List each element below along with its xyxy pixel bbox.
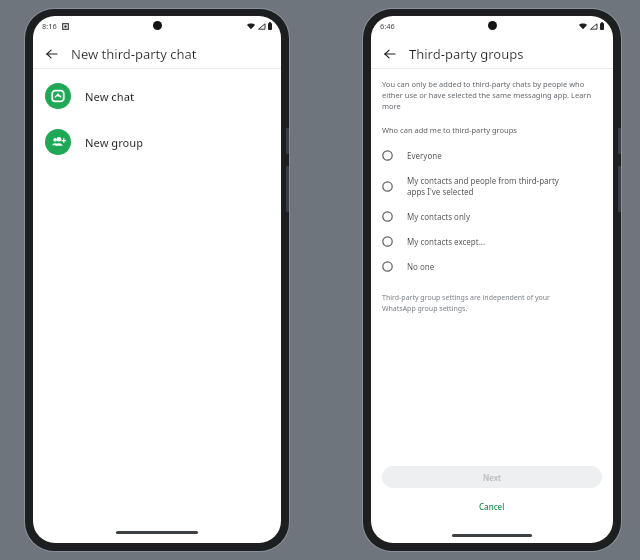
staticText: Who can add me to third-party groups [382, 125, 517, 135]
button[interactable]: No one [371, 254, 613, 279]
staticText: No one [407, 261, 435, 272]
staticText: My contacts and people from third-party … [407, 175, 559, 197]
staticText: New third-party chat [71, 45, 197, 63]
button[interactable]: My contacts except... [371, 229, 613, 254]
button[interactable]: New chat [33, 79, 281, 113]
button[interactable]: My contacts and people from third-party … [371, 168, 613, 204]
staticText: Everyone [407, 150, 442, 161]
staticText: My contacts only [407, 211, 470, 222]
staticText: My contacts except... [407, 236, 486, 247]
staticText: You can only be added to third-party cha… [382, 79, 602, 111]
staticText: Third-party group settings are independe… [382, 293, 550, 313]
button[interactable]: Back [43, 45, 61, 63]
button[interactable]: Back [381, 45, 399, 63]
button[interactable]: Cancel [371, 498, 613, 515]
staticText: 8:16 [42, 21, 57, 31]
staticText: 6:46 [380, 21, 395, 31]
button[interactable]: New group [33, 125, 281, 159]
staticText: Cancel [479, 501, 505, 512]
button[interactable]: Next [382, 466, 602, 488]
staticText: Next [483, 472, 502, 483]
staticText: New chat [85, 89, 135, 104]
staticText: New group [85, 135, 144, 150]
staticText: Third-party groups [409, 45, 524, 63]
button[interactable]: My contacts only [371, 204, 613, 229]
button[interactable]: Everyone [371, 143, 613, 168]
